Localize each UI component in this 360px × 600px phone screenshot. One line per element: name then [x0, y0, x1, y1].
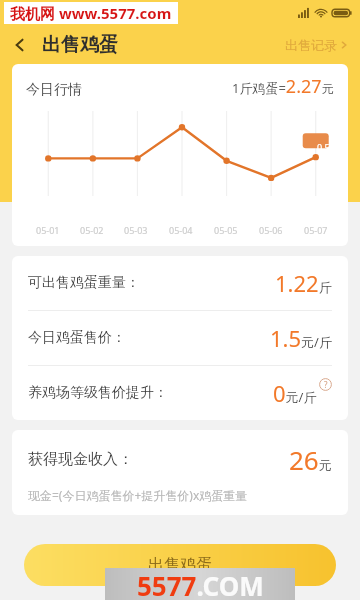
staticText: 今日行情 — [26, 81, 82, 99]
staticText: 1斤鸡蛋=2.27元 — [232, 74, 334, 99]
button[interactable]: 可出售鸡蛋重量： — [28, 256, 332, 310]
button[interactable]: 出售记录 — [281, 33, 352, 57]
staticText: 26元 — [289, 442, 332, 477]
staticText: 05-01 — [36, 224, 60, 236]
staticText: 1.22斤 — [275, 268, 332, 298]
staticText: 1.5元/斤 — [270, 323, 332, 353]
staticText: 出售鸡蛋 — [148, 555, 212, 575]
staticText: 05-05 — [214, 224, 238, 236]
button[interactable]: 出售鸡蛋 — [24, 544, 336, 586]
staticText: 0元/斤 — [273, 378, 317, 408]
button[interactable]: 养鸡场等级售价提升： — [28, 366, 332, 420]
staticText: 养鸡场等级售价提升： — [28, 384, 168, 402]
staticText: ? — [324, 379, 328, 390]
staticText: 我机网 www.5577.com — [10, 3, 172, 23]
staticText: 0.5 — [317, 141, 330, 153]
staticText: 出售鸡蛋 — [42, 33, 118, 57]
staticText: 获得现金收入： — [28, 450, 133, 469]
button[interactable]: Help — [319, 378, 332, 391]
staticText: 05-03 — [124, 224, 148, 236]
staticText: 现金=(今日鸡蛋售价+提升售价)x鸡蛋重量 — [28, 487, 248, 503]
staticText: 今日鸡蛋售价： — [28, 329, 126, 347]
staticText: 05-07 — [304, 224, 328, 236]
button[interactable]: Back — [0, 26, 40, 64]
button[interactable]: 今日鸡蛋售价： — [28, 311, 332, 365]
staticText: 5577.COM — [137, 568, 264, 600]
staticText: 05-02 — [80, 224, 104, 236]
staticText: 05-04 — [169, 224, 193, 236]
staticText: 可出售鸡蛋重量： — [28, 274, 140, 292]
staticText: 出售记录 — [285, 37, 337, 53]
staticText: 05-06 — [259, 224, 283, 236]
